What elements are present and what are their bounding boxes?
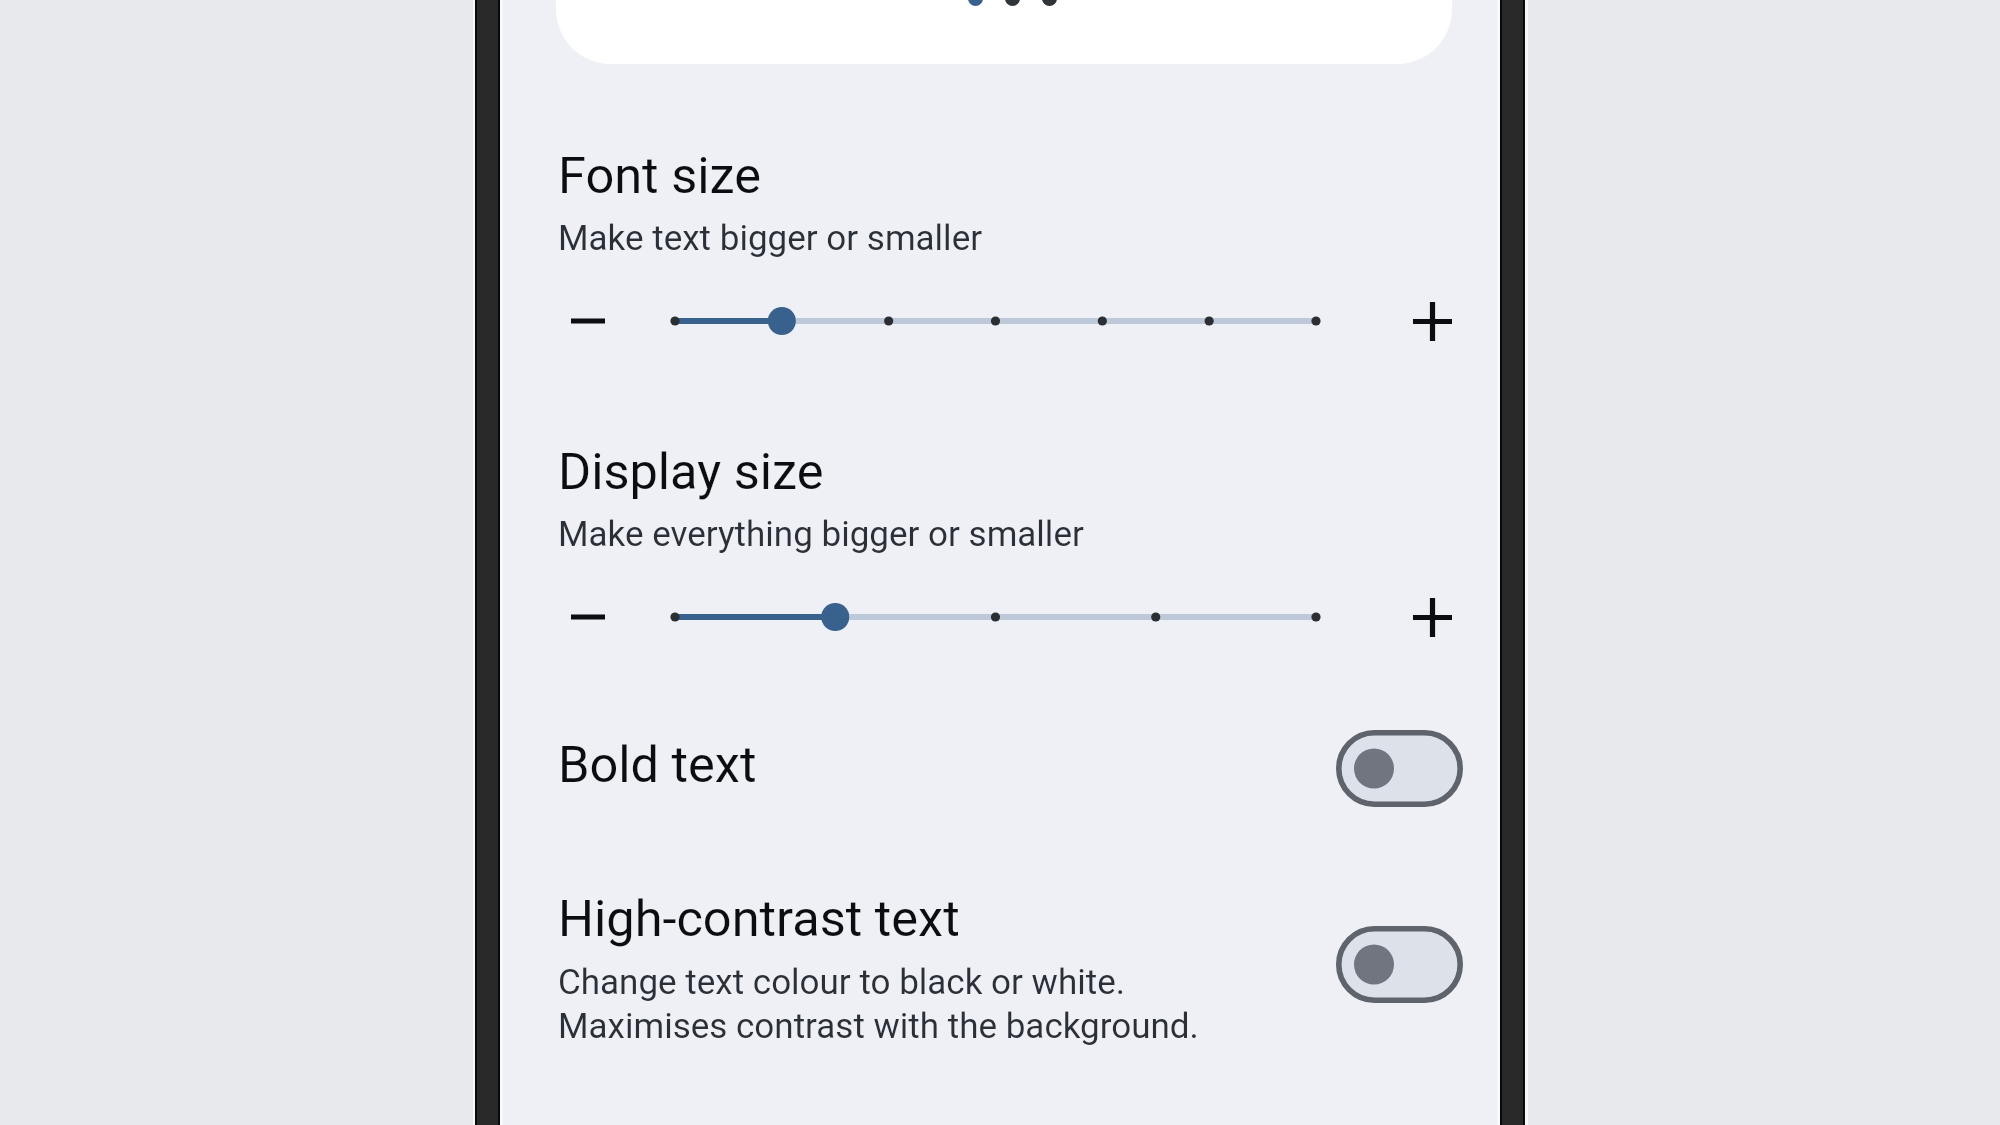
- button[interactable]: Go to page 2: [1005, 0, 1020, 6]
- staticText: Font size: [558, 146, 761, 205]
- staticText: Change text colour to black or white.: [558, 962, 1125, 1003]
- staticText: Bold text: [558, 735, 757, 794]
- staticText: Display size: [558, 442, 824, 501]
- button[interactable]: High-contrast text toggle: [1336, 926, 1463, 1003]
- staticText: Make text bigger or smaller: [558, 218, 983, 259]
- button[interactable]: Increase Font size: [1387, 276, 1477, 366]
- button[interactable]: Decrease Font size: [543, 276, 633, 366]
- staticText: Maximises contrast with the background.: [558, 1006, 1199, 1047]
- staticText: High-contrast text: [558, 889, 960, 948]
- button[interactable]: Go to page 1: [968, 0, 983, 6]
- button[interactable]: Bold text toggle: [1336, 730, 1463, 807]
- button[interactable]: Increase Display size: [1387, 572, 1477, 662]
- button[interactable]: Go to page 3: [1042, 0, 1057, 6]
- button[interactable]: Decrease Display size: [543, 572, 633, 662]
- button[interactable]: Font size slider: [655, 271, 1336, 371]
- button[interactable]: Bold text: [500, 700, 1500, 840]
- button[interactable]: Display size slider: [655, 567, 1336, 667]
- staticText: Make everything bigger or smaller: [558, 514, 1084, 555]
- button[interactable]: Go to page 1: [556, 0, 1452, 64]
- button[interactable]: High-contrast text: [500, 870, 1500, 1070]
